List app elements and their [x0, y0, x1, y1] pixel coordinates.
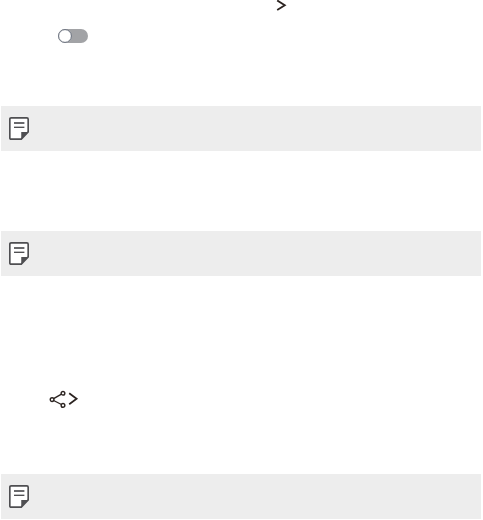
button[interactable] — [1, 231, 481, 276]
button[interactable] — [1, 106, 481, 151]
button[interactable]: Open — [275, 0, 287, 13]
button[interactable]: Toggle setting — [58, 29, 88, 43]
button[interactable]: Share — [48, 390, 80, 409]
button[interactable] — [1, 474, 481, 519]
